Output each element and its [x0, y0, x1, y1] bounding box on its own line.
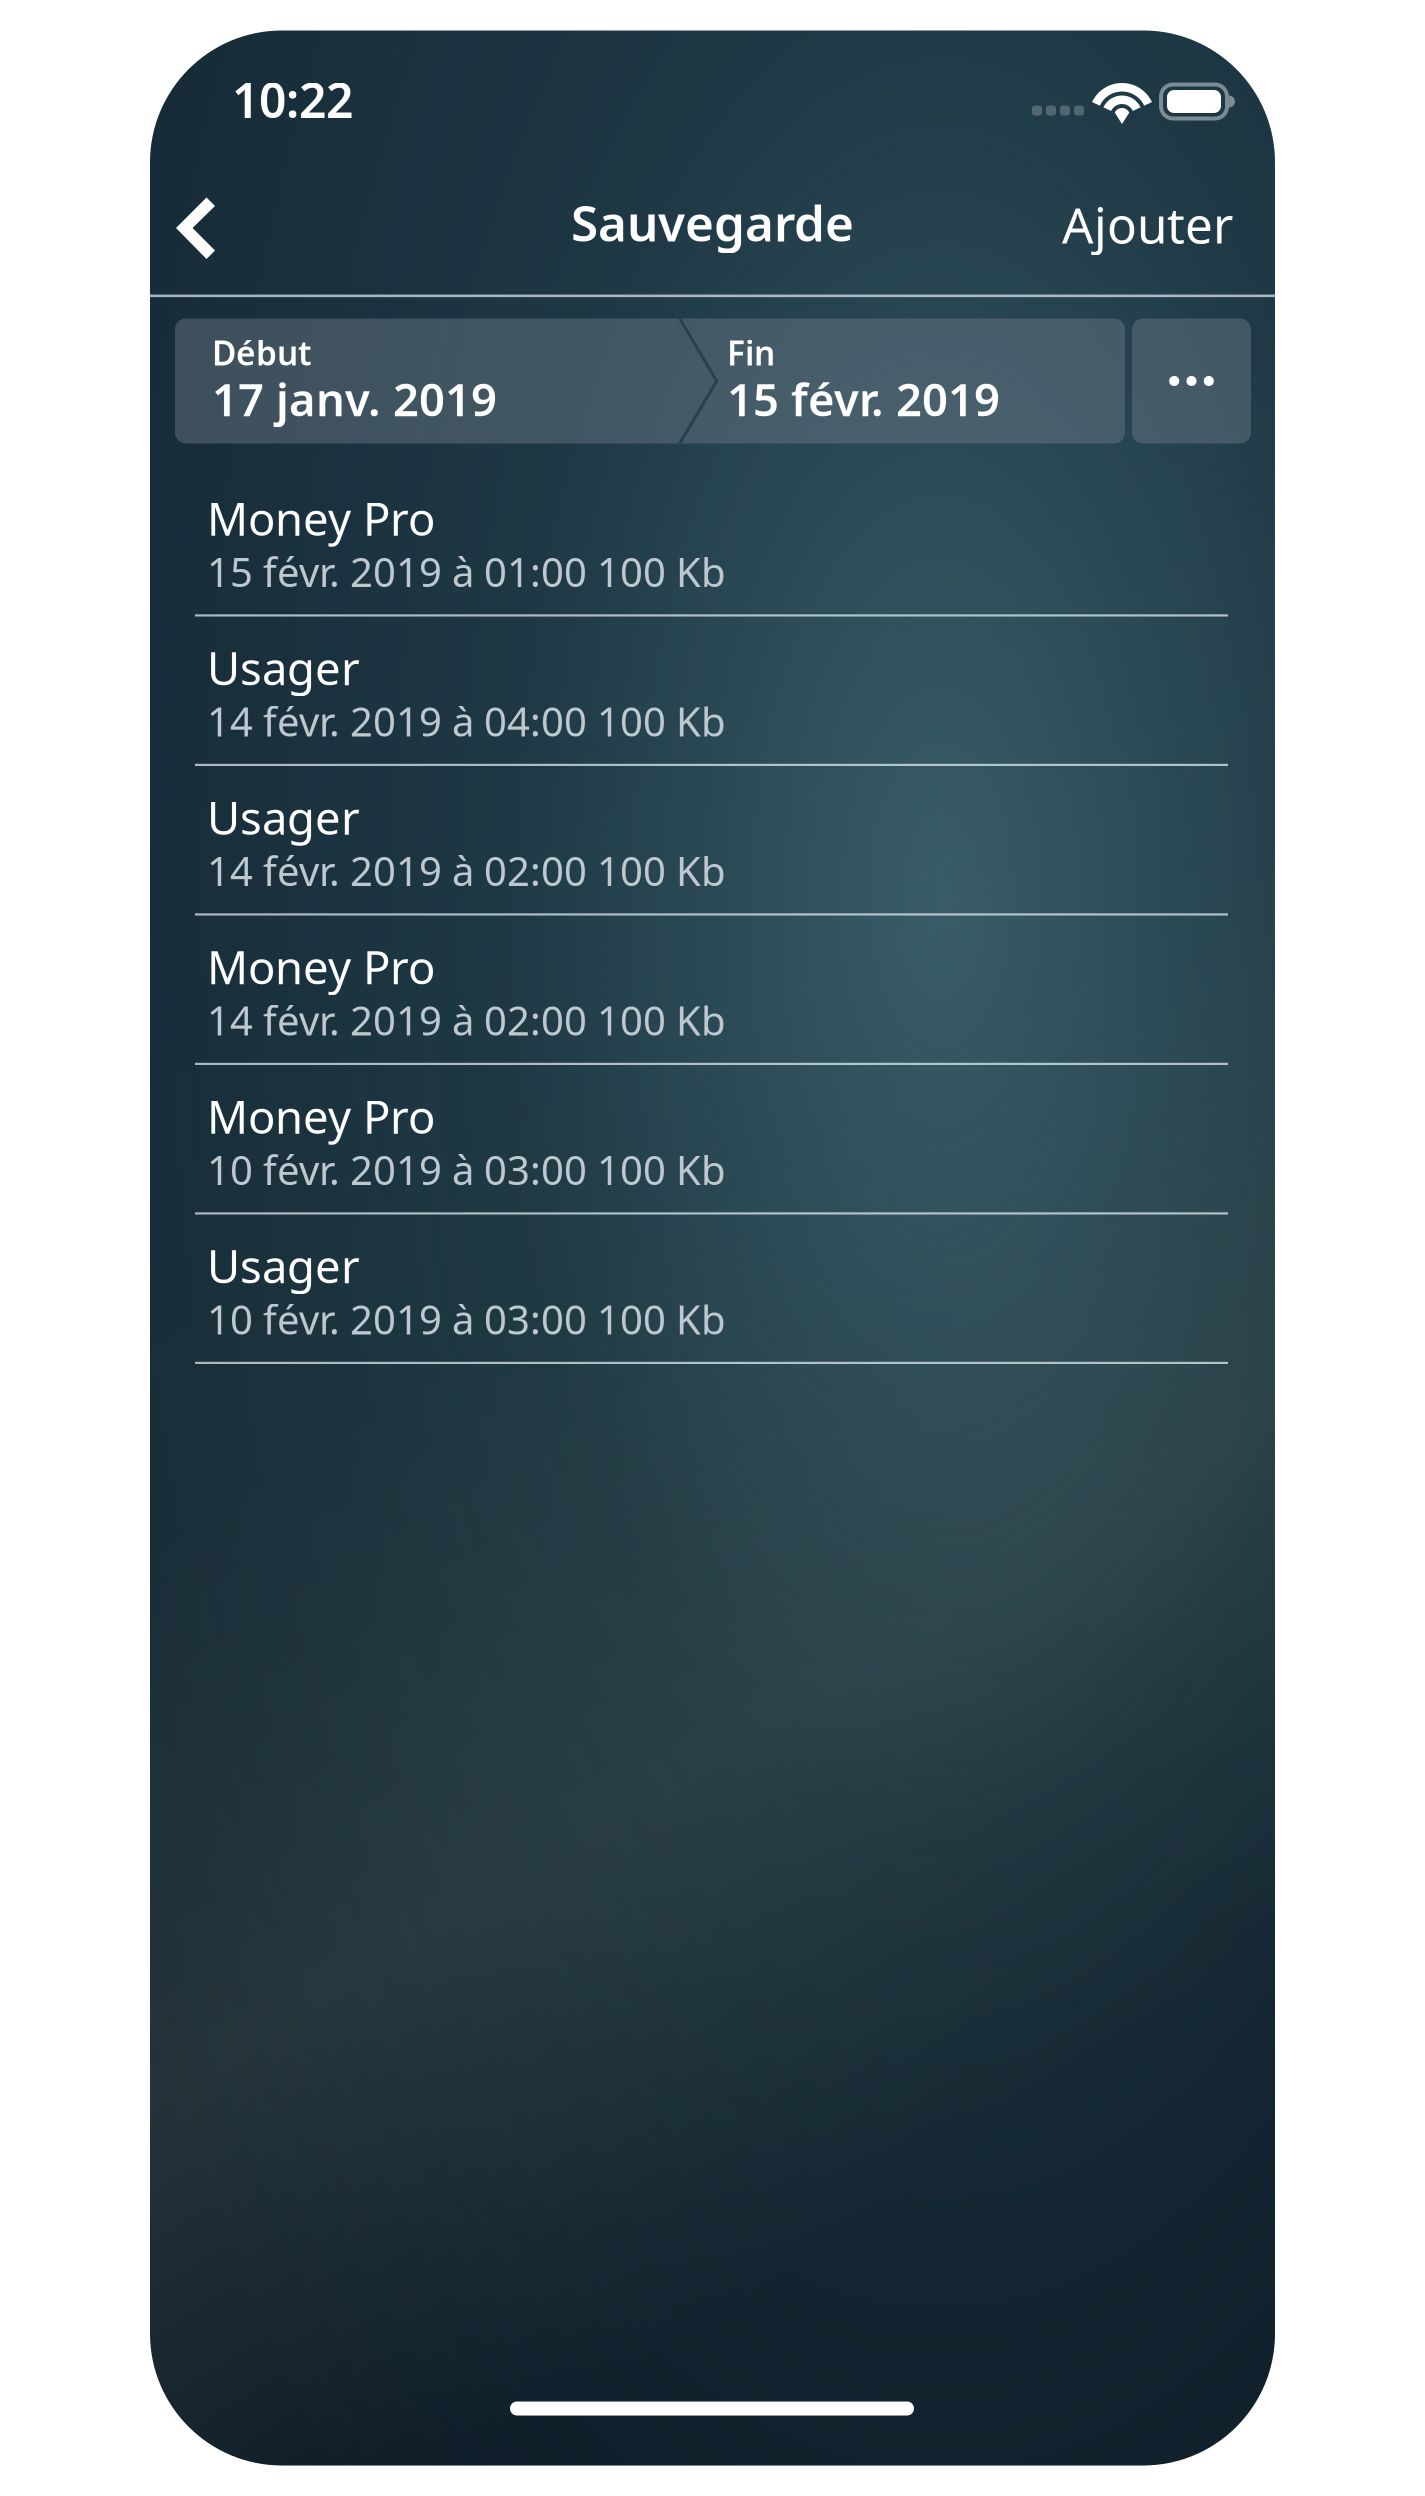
staticText: 15 févr. 2019 — [727, 368, 1000, 429]
button[interactable]: More options — [1132, 318, 1251, 443]
button[interactable]: Money Pro — [150, 467, 1275, 616]
staticText: Money Pro — [207, 488, 435, 548]
staticText: 10 févr. 2019 à 03:00 100 Kb — [207, 1143, 726, 1196]
staticText: 14 févr. 2019 à 02:00 100 Kb — [207, 993, 726, 1047]
button[interactable]: Début — [175, 318, 691, 443]
button[interactable]: Usager — [150, 766, 1275, 915]
staticText: 14 févr. 2019 à 04:00 100 Kb — [207, 694, 726, 748]
staticText: Début — [212, 330, 312, 375]
button[interactable]: Fin — [691, 318, 1125, 443]
staticText: Usager — [207, 1235, 360, 1296]
staticText: 10:22 — [232, 67, 353, 131]
staticText: Ajouter — [1062, 191, 1233, 257]
staticText: Usager — [207, 787, 360, 847]
button[interactable]: Usager — [150, 1214, 1275, 1364]
staticText: Money Pro — [207, 936, 435, 997]
staticText: Money Pro — [207, 1086, 435, 1146]
button[interactable]: Ajouter — [1010, 167, 1275, 291]
staticText: 15 févr. 2019 à 01:00 100 Kb — [207, 545, 726, 598]
button[interactable]: Usager — [150, 616, 1275, 766]
staticText: Fin — [727, 330, 775, 375]
staticText: Usager — [207, 637, 360, 698]
staticText: 10 févr. 2019 à 03:00 100 Kb — [207, 1292, 726, 1346]
button[interactable]: Money Pro — [150, 915, 1275, 1065]
staticText: 17 janv. 2019 — [212, 368, 497, 429]
staticText: 14 févr. 2019 à 02:00 100 Kb — [207, 844, 726, 897]
button[interactable]: Back — [150, 167, 286, 291]
button[interactable]: Money Pro — [150, 1065, 1275, 1214]
staticText: Sauvegarde — [571, 189, 854, 255]
